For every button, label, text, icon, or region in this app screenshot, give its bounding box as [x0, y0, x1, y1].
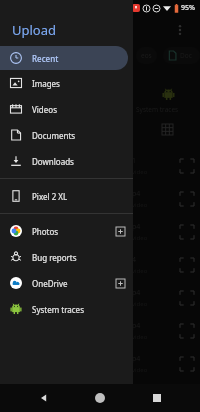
staticText: Pixel 2 XL [32, 191, 125, 202]
staticText: Downloads [32, 156, 125, 167]
button[interactable]: Photos [0, 218, 133, 244]
staticText: System traces [32, 304, 125, 315]
button[interactable]: p4 [0, 215, 200, 248]
button[interactable]: Home [87, 385, 113, 411]
button[interactable]: Recent apps [144, 385, 170, 411]
button[interactable]: Videos [0, 96, 133, 122]
staticText: Bug reports [32, 252, 125, 263]
button[interactable]: Documents [0, 122, 133, 148]
staticText: System traces [136, 105, 179, 114]
staticText: video [132, 333, 148, 341]
staticText: p4 [132, 321, 141, 331]
button[interactable]: p4 [0, 182, 200, 215]
button[interactable]: p4 [0, 347, 200, 380]
staticText: p4 [132, 288, 141, 298]
button[interactable]: OneDrive [0, 270, 133, 296]
staticText: Photos [32, 226, 116, 237]
button[interactable]: p4 [0, 281, 200, 314]
button[interactable]: 1 [0, 149, 200, 182]
button[interactable]: Back [31, 385, 57, 411]
button[interactable]: Images [0, 70, 133, 96]
button[interactable]: System traces [0, 296, 133, 322]
button[interactable]: More options [168, 18, 192, 42]
staticText: Upload [12, 21, 57, 39]
staticText: Images [32, 78, 125, 89]
button[interactable]: p4 [0, 314, 200, 347]
button[interactable]: 4 [0, 248, 200, 281]
staticText: Documen [180, 51, 195, 60]
button[interactable]: Documen [163, 47, 200, 64]
staticText: Videos [32, 104, 125, 115]
staticText: Documents [32, 130, 125, 141]
button[interactable]: Pixel 2 XL [0, 183, 133, 209]
staticText: video [132, 267, 148, 275]
staticText: Recent [32, 53, 59, 64]
button[interactable]: Downloads [0, 148, 133, 174]
staticText: p4 [132, 354, 141, 364]
staticText: video [132, 201, 148, 209]
staticText: p4 [132, 189, 141, 199]
staticText: video [132, 168, 148, 176]
staticText: 95% [181, 3, 195, 13]
staticText: OneDrive [32, 278, 116, 289]
staticText: video [132, 234, 148, 242]
button[interactable]: Bug reports [0, 244, 133, 270]
staticText: eos [141, 51, 152, 60]
button[interactable]: Recent [0, 46, 128, 70]
staticText: p4 [132, 222, 141, 232]
staticText: video [132, 300, 148, 308]
staticText: 1 [132, 156, 137, 166]
staticText: video [132, 366, 148, 374]
staticText: 4 [132, 255, 137, 265]
